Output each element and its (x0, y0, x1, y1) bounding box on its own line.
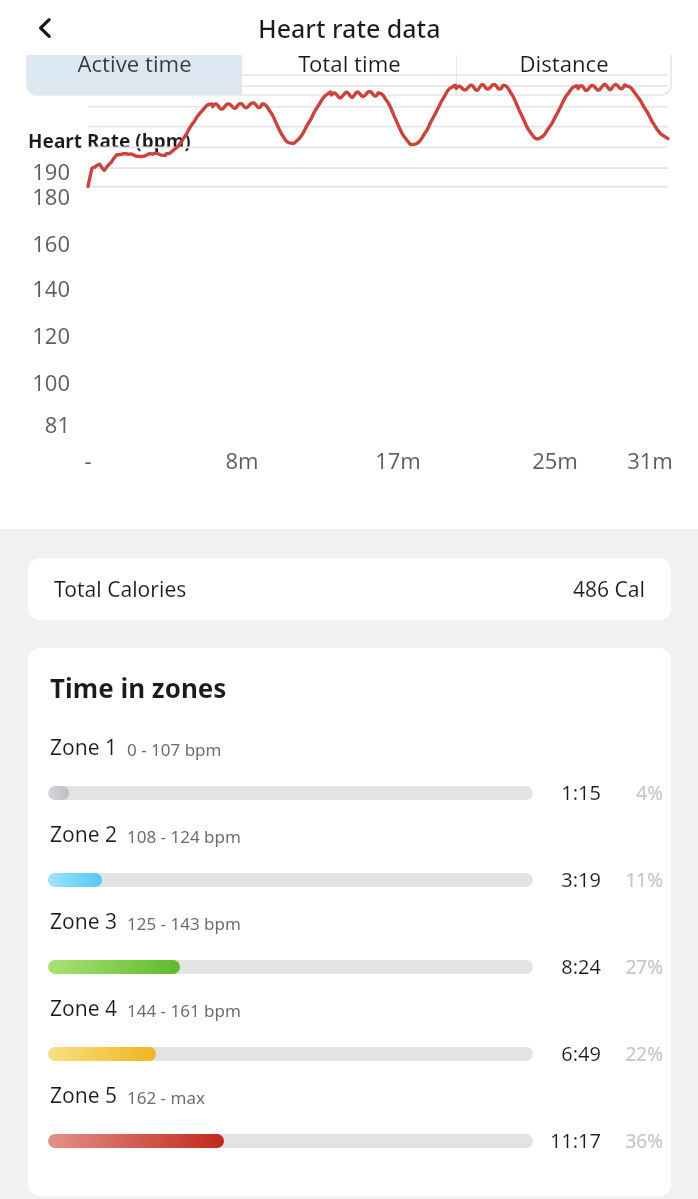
staticText: 160 (32, 228, 70, 258)
button[interactable]: Active time (27, 30, 241, 95)
staticText: 190 (32, 156, 70, 186)
staticText: Heart rate data (258, 11, 441, 45)
staticText: 6:49 (561, 1040, 601, 1067)
staticText: Zone 4 (50, 994, 118, 1023)
staticText: 8m (225, 445, 259, 475)
staticText: 3:19 (561, 866, 601, 893)
staticText: Active time (77, 48, 192, 78)
staticText: Total time (298, 48, 401, 78)
staticText: 140 (32, 273, 70, 303)
staticText: 17m (375, 445, 421, 475)
staticText: 4% (636, 780, 663, 806)
staticText: 125 - 143 bpm (127, 912, 241, 935)
staticText: Zone 1 (50, 733, 118, 762)
staticText: Zone 3 (50, 907, 118, 936)
staticText: 180 (32, 181, 70, 211)
staticText: Zone 5 (50, 1081, 118, 1110)
staticText: 144 - 161 bpm (127, 999, 241, 1022)
staticText: 31m (627, 445, 673, 475)
staticText: 162 - max (127, 1086, 205, 1109)
staticText: 100 (32, 367, 70, 397)
staticText: 8:24 (561, 953, 601, 980)
staticText: 11:17 (549, 1127, 601, 1154)
staticText: 486 Cal (573, 575, 645, 604)
staticText: - (84, 445, 92, 475)
staticText: 108 - 124 bpm (127, 825, 241, 848)
staticText: 1:15 (561, 779, 601, 806)
button[interactable]: Distance (457, 30, 671, 95)
staticText: Heart Rate (bpm) (28, 128, 191, 154)
staticText: Time in zones (50, 670, 227, 705)
staticText: Distance (519, 48, 609, 78)
staticText: 27% (625, 954, 663, 980)
staticText: Total Calories (54, 575, 187, 604)
button[interactable]: Total Calories (28, 558, 671, 620)
button[interactable]: Total time (242, 30, 456, 95)
staticText: 36% (625, 1128, 663, 1154)
staticText: 120 (32, 320, 70, 350)
staticText: Zone 2 (50, 820, 118, 849)
staticText: 11% (625, 867, 663, 893)
button[interactable]: Back (16, 0, 74, 55)
staticText: 81 (44, 409, 70, 439)
staticText: 0 - 107 bpm (127, 738, 222, 761)
staticText: 22% (625, 1041, 663, 1067)
staticText: 25m (532, 445, 578, 475)
